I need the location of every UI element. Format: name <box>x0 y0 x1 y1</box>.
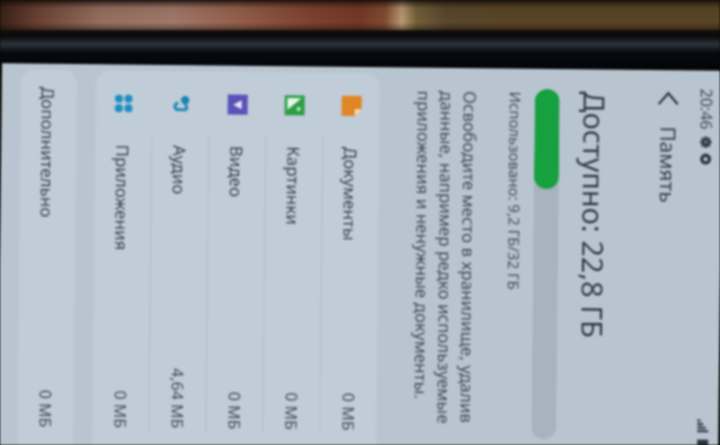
button[interactable]: Дополнительно <box>17 69 77 445</box>
button[interactable]: Документы <box>320 73 380 445</box>
staticText: 4,64 МБ <box>166 368 189 429</box>
staticText: Освободите место в хранилище, удалив дан… <box>409 90 482 444</box>
staticText: Память <box>653 126 682 203</box>
staticText: 20:46 <box>695 88 718 130</box>
button[interactable]: Назад <box>649 78 689 118</box>
staticText: 0 МБ <box>280 392 303 430</box>
staticText: Дополнительно <box>35 87 60 218</box>
button[interactable]: Аудио <box>149 71 209 445</box>
staticText: Документы <box>338 147 362 241</box>
button[interactable]: Картинки <box>263 72 323 445</box>
staticText: Использовано: 9,2 ГБ/32 ГБ <box>504 91 526 291</box>
staticText: 0 МБ <box>223 392 246 430</box>
staticText: Картинки <box>281 146 305 225</box>
button[interactable]: Видео <box>206 71 266 445</box>
staticText: Аудио <box>168 145 191 195</box>
staticText: Приложения <box>110 144 134 251</box>
button[interactable]: Приложения <box>92 70 152 445</box>
staticText: 0 МБ <box>109 390 132 429</box>
staticText: 0 МБ <box>34 390 57 428</box>
staticText: Доступно: 22,8 ГБ <box>573 91 615 339</box>
staticText: 0 МБ <box>337 393 360 431</box>
staticText: Видео <box>225 146 248 198</box>
